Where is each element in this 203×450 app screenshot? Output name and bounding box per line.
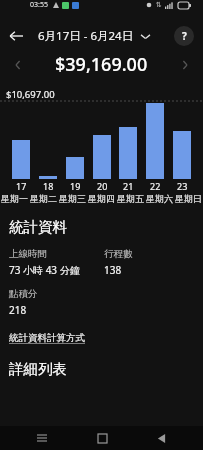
staticText: 星期六 <box>146 193 173 204</box>
staticText: 73 小時 43 分鐘 <box>9 263 80 277</box>
button[interactable]: Home <box>84 426 120 450</box>
button[interactable]: Help <box>174 26 194 46</box>
button[interactable]: Back <box>0 20 32 52</box>
button[interactable]: Back <box>143 426 179 450</box>
staticText: 星期三 <box>59 193 86 204</box>
staticText: $39,169.00 <box>55 52 148 77</box>
staticText: 行程數 <box>104 248 133 260</box>
staticText: 138 <box>104 263 122 277</box>
staticText: 20 <box>97 180 108 192</box>
button[interactable]: Previous period <box>8 55 28 75</box>
staticText: 03:55 <box>30 0 48 10</box>
staticText: 統計資料計算方式 <box>9 332 85 344</box>
staticText: 星期五 <box>117 193 144 204</box>
staticText: 18 <box>43 180 54 192</box>
button[interactable]: 統計資料計算方式 <box>9 332 85 344</box>
button[interactable]: 6月17日 - 6月24日 <box>38 28 150 44</box>
button[interactable]: Recent apps <box>24 426 60 450</box>
staticText: 23 <box>177 180 188 192</box>
staticText: 星期四 <box>88 193 115 204</box>
staticText: 星期日 <box>175 193 202 204</box>
staticText: ? <box>182 29 187 43</box>
staticText: 詳細列表 <box>9 360 67 378</box>
staticText: 21 <box>123 180 134 192</box>
staticText: ⇅ <box>156 1 162 9</box>
staticText: 19 <box>70 180 81 192</box>
staticText: 17 <box>16 180 27 192</box>
staticText: 統計資料 <box>9 218 67 236</box>
button[interactable]: Next period <box>175 55 195 75</box>
staticText: 星期一 <box>1 193 28 204</box>
staticText: 上線時間 <box>9 248 47 260</box>
staticText: 點積分 <box>9 288 38 300</box>
staticText: 6月17日 - 6月24日 <box>38 28 134 44</box>
staticText: 星期二 <box>30 193 57 204</box>
staticText: $10,697.00 <box>6 88 55 101</box>
staticText: 22 <box>150 180 161 192</box>
staticText: 218 <box>9 303 27 317</box>
